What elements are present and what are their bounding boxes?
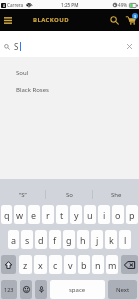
staticText: c — [53, 259, 58, 271]
button[interactable]: m — [106, 255, 118, 274]
staticText: s — [25, 234, 30, 246]
staticText: j — [96, 234, 99, 246]
staticText: 49% — [118, 2, 128, 8]
button[interactable]: x — [34, 255, 47, 274]
button[interactable]: Search — [106, 9, 122, 31]
staticText: space — [69, 286, 86, 294]
button[interactable]: e — [28, 205, 40, 224]
button[interactable]: l — [119, 230, 131, 249]
button[interactable]: w — [14, 205, 26, 224]
staticText: x — [38, 259, 43, 271]
staticText: t — [60, 209, 64, 221]
staticText: e — [31, 209, 37, 221]
button[interactable]: So — [46, 184, 92, 205]
staticText: BLACKOUD — [33, 16, 69, 24]
button[interactable]: j — [91, 230, 103, 249]
staticText: y — [74, 209, 79, 221]
button[interactable]: y — [70, 205, 82, 224]
staticText: f — [53, 234, 57, 246]
staticText: a — [11, 234, 17, 246]
button[interactable]: Open navigation menu — [0, 9, 16, 31]
staticText: 3 — [134, 14, 137, 19]
button[interactable]: Shopping cart — [122, 9, 139, 31]
staticText: o — [115, 209, 121, 221]
button[interactable]: Shift — [1, 255, 16, 274]
staticText: r — [46, 209, 50, 221]
staticText: Next — [116, 286, 130, 294]
button[interactable]: o — [112, 205, 124, 224]
staticText: Black Roses — [16, 86, 49, 94]
staticText: So — [66, 191, 73, 199]
button[interactable]: 123 — [1, 280, 17, 299]
button[interactable]: Black Roses — [0, 81, 139, 98]
staticText: p — [129, 209, 135, 221]
staticText: Soul — [16, 69, 29, 77]
staticText: u — [87, 209, 93, 221]
button[interactable]: Delete — [121, 255, 138, 274]
button[interactable]: Next — [108, 280, 137, 299]
button[interactable]: Clear search — [125, 42, 134, 51]
staticText: She — [111, 191, 122, 199]
button[interactable]: space — [50, 280, 105, 299]
button[interactable]: z — [19, 255, 32, 274]
staticText: k — [109, 234, 114, 246]
button[interactable]: s — [21, 230, 33, 249]
button[interactable]: n — [92, 255, 104, 274]
button[interactable]: d — [35, 230, 47, 249]
button[interactable]: h — [77, 230, 89, 249]
button[interactable]: g — [63, 230, 75, 249]
button[interactable]: r — [42, 205, 54, 224]
button[interactable]: u — [84, 205, 96, 224]
button[interactable]: i — [98, 205, 110, 224]
button[interactable]: q — [1, 205, 12, 224]
button[interactable]: “S” — [0, 184, 45, 205]
staticText: q — [4, 209, 10, 221]
staticText: l — [124, 234, 127, 246]
staticText: h — [80, 234, 86, 246]
button[interactable]: a — [8, 230, 19, 249]
button[interactable]: Emoji — [20, 280, 32, 299]
button[interactable]: Dictation — [35, 280, 47, 299]
button[interactable]: f — [49, 230, 61, 249]
staticText: S — [14, 41, 19, 52]
button[interactable]: c — [49, 255, 62, 274]
staticText: w — [16, 209, 24, 221]
staticText: 4 — [3, 4, 5, 8]
staticText: v — [68, 259, 73, 271]
button[interactable]: b — [78, 255, 90, 274]
button[interactable]: Soul — [0, 64, 139, 81]
button[interactable]: v — [64, 255, 76, 274]
staticText: g — [66, 234, 72, 246]
staticText: b — [81, 259, 87, 271]
button[interactable]: t — [56, 205, 68, 224]
button[interactable]: k — [105, 230, 117, 249]
staticText: n — [95, 259, 101, 271]
button[interactable]: She — [93, 184, 139, 205]
staticText: d — [38, 234, 44, 246]
staticText: Carrera — [7, 2, 24, 8]
staticText: z — [23, 259, 28, 271]
button[interactable]: p — [126, 205, 138, 224]
staticText: 123 — [4, 286, 14, 293]
staticText: i — [103, 209, 106, 221]
staticText: “S” — [19, 191, 27, 199]
staticText: m — [108, 259, 117, 271]
staticText: 1:25 PM — [61, 2, 79, 8]
